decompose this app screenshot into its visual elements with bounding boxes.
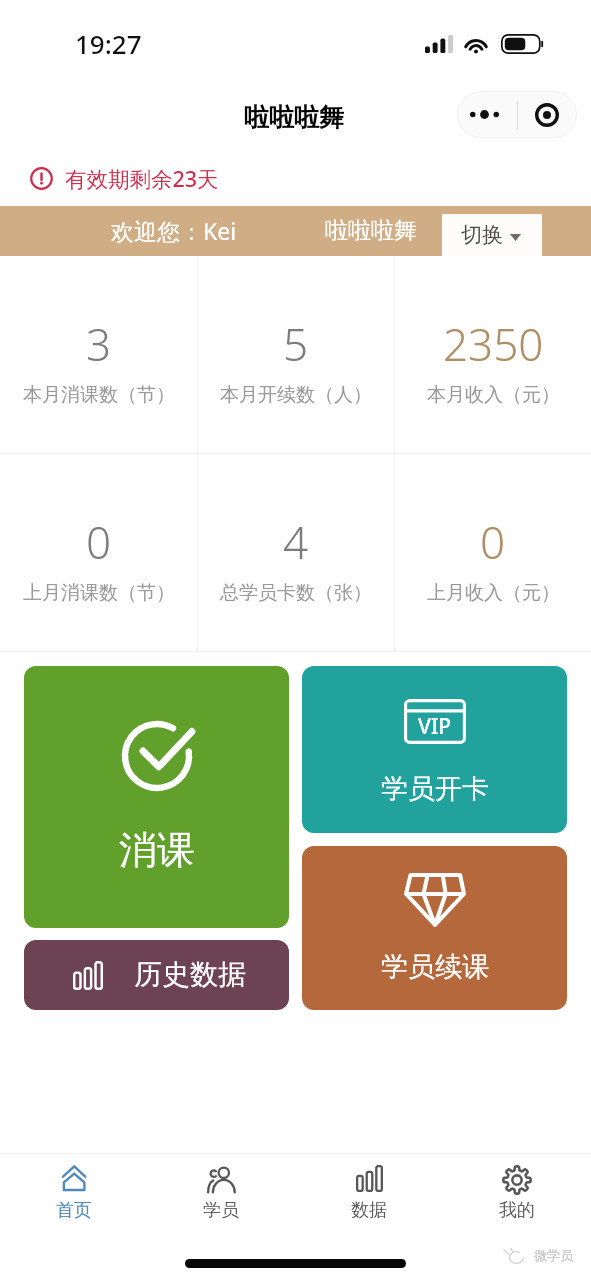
button[interactable]: 切换 (442, 214, 542, 256)
staticText: 啦啦啦舞 (244, 102, 344, 133)
staticText: 学员 (203, 1199, 239, 1222)
button[interactable]: 0 (395, 454, 591, 651)
staticText: 19:27 (75, 26, 142, 61)
staticText: 历史数据 (134, 957, 246, 992)
staticText: 4 (283, 512, 309, 572)
staticText: 我的 (499, 1199, 535, 1222)
button[interactable]: 0 (0, 454, 197, 651)
button[interactable]: 消课 (24, 666, 289, 928)
staticText: 总学员卡数（张） (220, 581, 372, 605)
button[interactable]: Close mini program (518, 91, 577, 138)
staticText: 啦啦啦舞 (325, 216, 417, 245)
staticText: 数据 (351, 1199, 387, 1222)
button[interactable]: 数据 (295, 1154, 443, 1232)
button[interactable]: VIP (302, 666, 567, 833)
staticText: VIP (418, 712, 452, 741)
staticText: 3 (86, 314, 112, 374)
staticText: 本月收入（元） (427, 383, 560, 407)
staticText: 微学员 (534, 1247, 573, 1263)
staticText: 有效期剩余23天 (65, 164, 219, 193)
button[interactable]: 首页 (0, 1154, 147, 1232)
staticText: 首页 (56, 1199, 92, 1222)
staticText: 本月消课数（节） (23, 383, 175, 407)
staticText: 本月开续数（人） (220, 383, 372, 407)
button[interactable]: 历史数据 (24, 940, 289, 1010)
staticText: 消课 (119, 826, 195, 874)
staticText: 上月消课数（节） (23, 581, 175, 605)
button[interactable]: 我的 (443, 1154, 591, 1232)
staticText: 学员开卡 (381, 772, 489, 806)
staticText: 上月收入（元） (427, 581, 560, 605)
staticText: 切换 (461, 222, 503, 248)
staticText: 欢迎您：Kei (111, 215, 237, 246)
staticText: 2350 (443, 314, 544, 374)
staticText: 0 (480, 512, 506, 572)
button[interactable]: 2350 (395, 256, 591, 453)
button[interactable]: 学员续课 (302, 846, 567, 1010)
button[interactable]: 学员 (147, 1154, 295, 1232)
button[interactable]: 5 (198, 256, 394, 453)
staticText: 学员续课 (381, 950, 489, 984)
staticText: 0 (86, 512, 112, 572)
button[interactable]: 3 (0, 256, 197, 453)
button[interactable]: 4 (198, 454, 394, 651)
button[interactable]: More options (457, 91, 517, 138)
staticText: 5 (283, 314, 309, 374)
